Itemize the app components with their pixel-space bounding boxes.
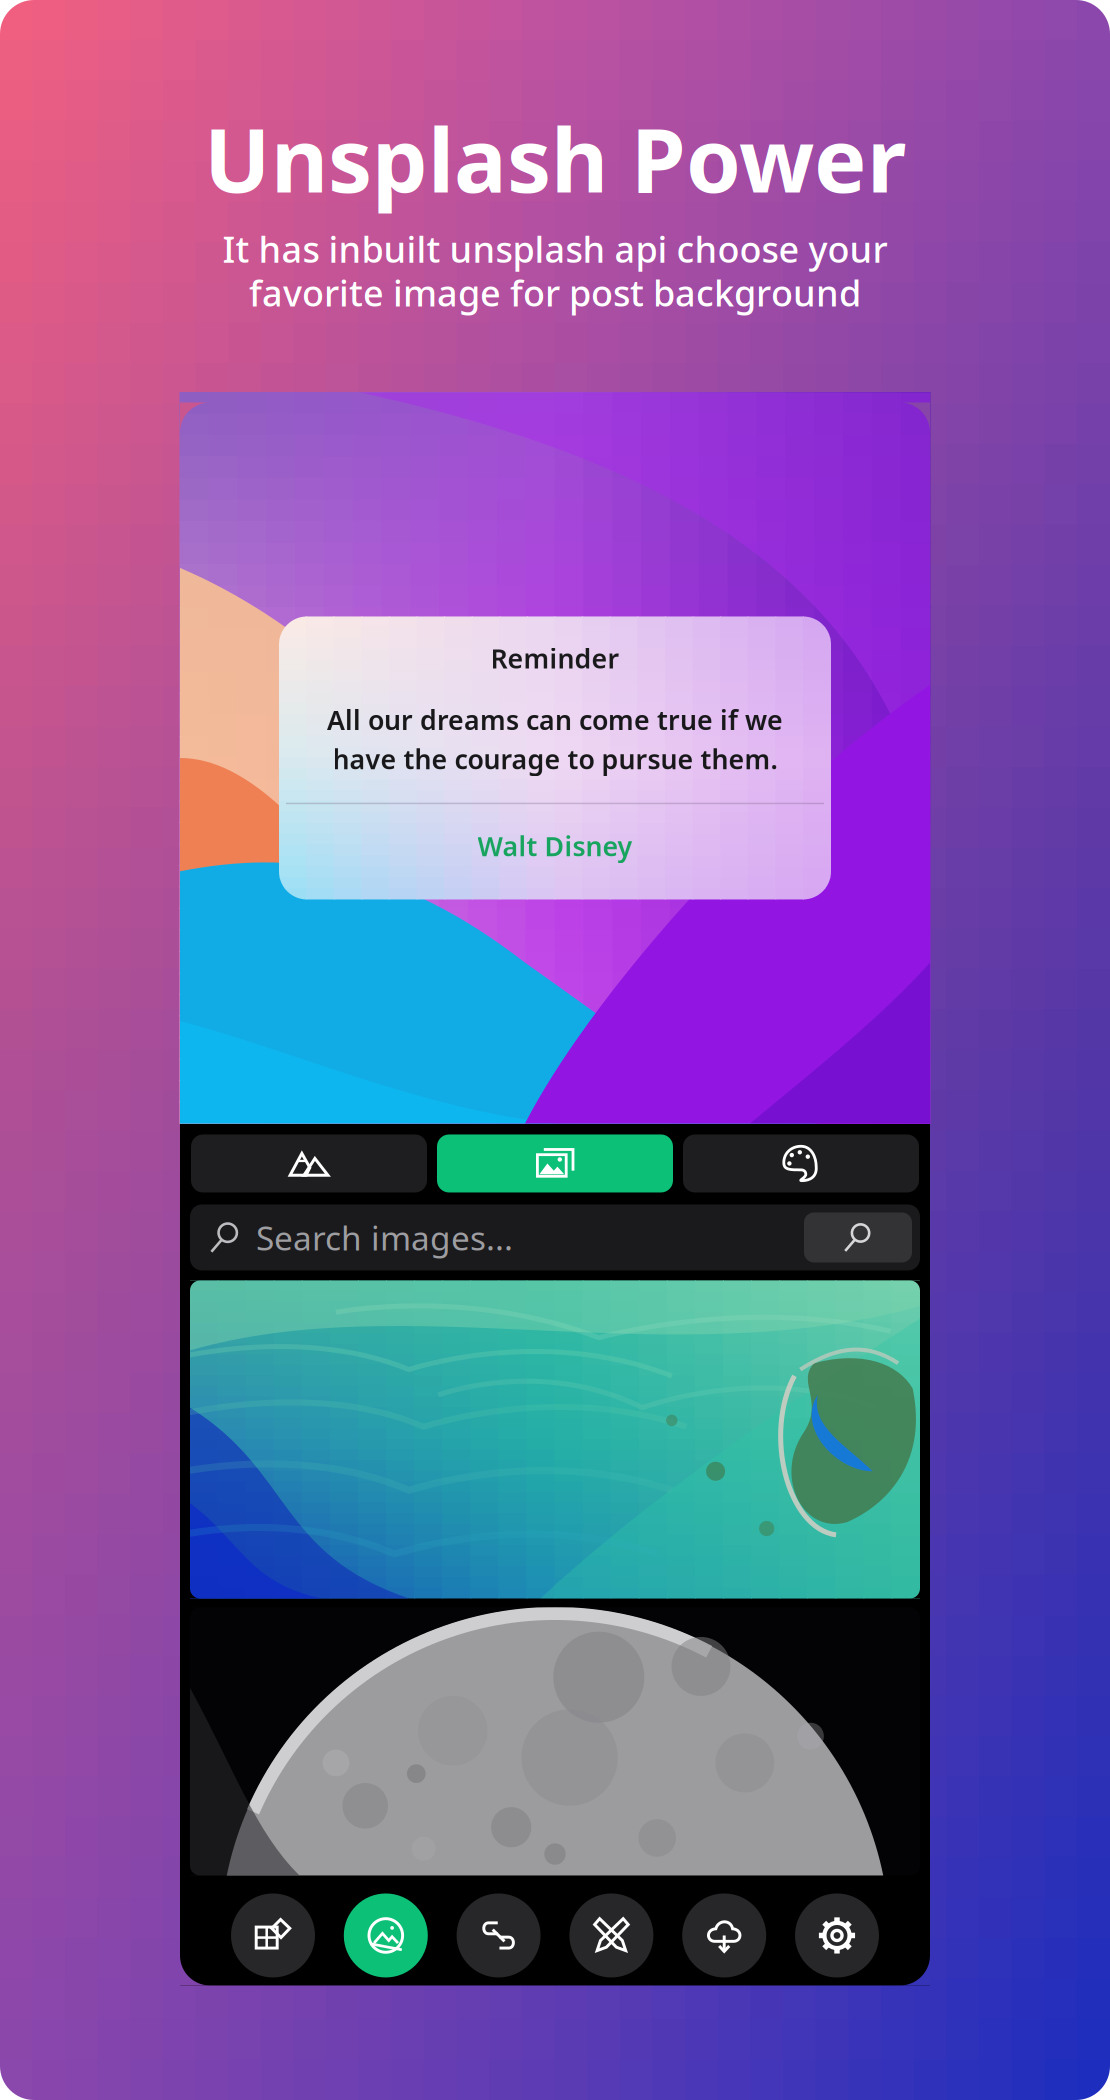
button[interactable]: Settings <box>795 1893 879 1977</box>
button[interactable]: Link <box>457 1893 541 1977</box>
button[interactable]: Download <box>682 1893 766 1977</box>
button[interactable]: Search images... <box>190 1204 920 1270</box>
button[interactable]: Colors <box>683 1134 919 1192</box>
staticText: Unsplash Power <box>204 100 906 217</box>
staticText: All our dreams can come true if we <box>327 702 783 737</box>
button[interactable]: Wallpapers <box>191 1134 427 1192</box>
staticText: favorite image for post background <box>249 269 861 316</box>
button[interactable]: Background <box>344 1893 428 1977</box>
staticText: have the courage to pursue them. <box>332 741 777 777</box>
staticText: Search images... <box>256 1215 513 1260</box>
staticText: Walt Disney <box>477 828 632 864</box>
button[interactable]: Draw <box>569 1893 653 1977</box>
staticText: It has inbuilt unsplash api choose your <box>222 225 887 273</box>
button[interactable]: Photos <box>437 1134 673 1192</box>
staticText: Reminder <box>490 640 619 676</box>
button[interactable]: Templates <box>231 1893 315 1977</box>
